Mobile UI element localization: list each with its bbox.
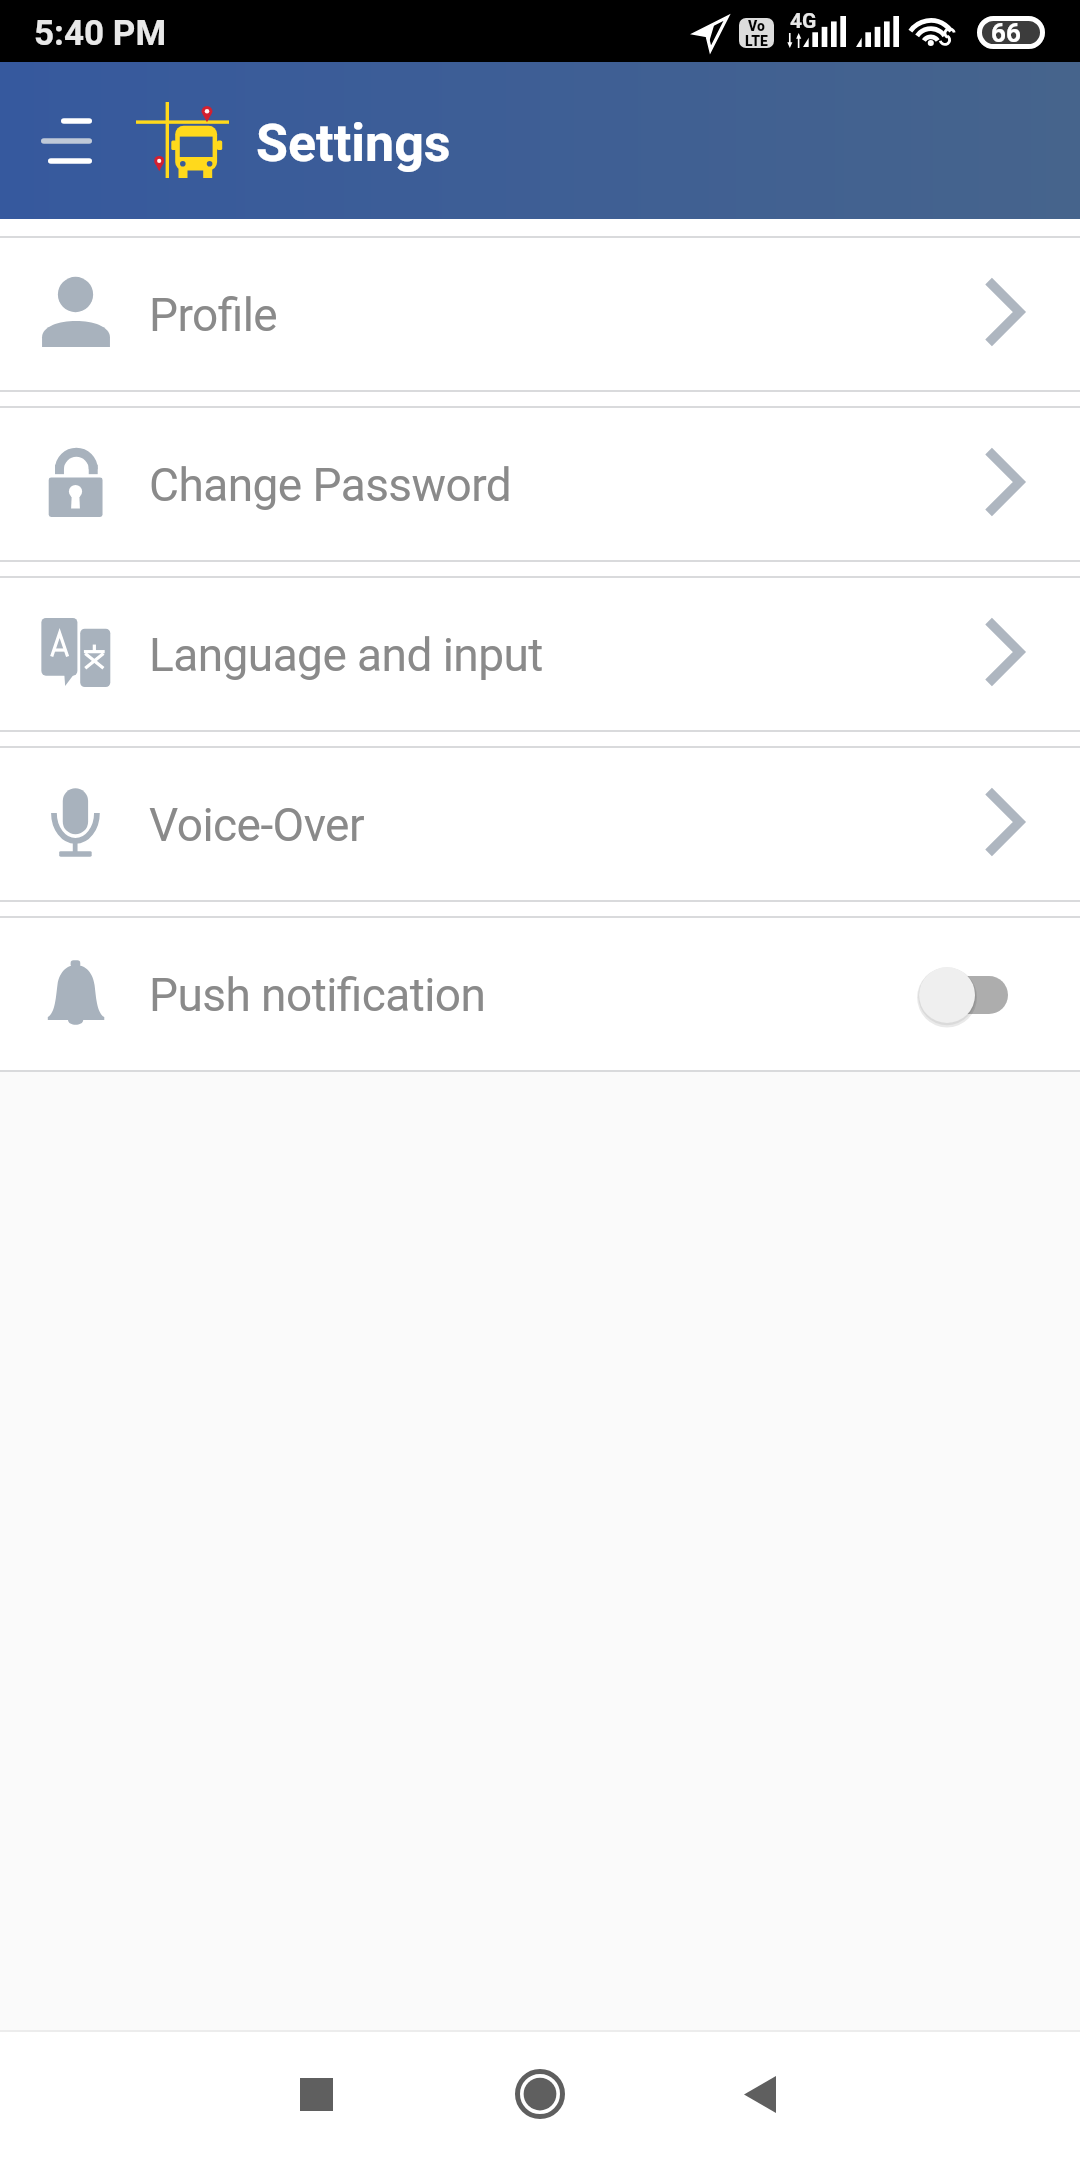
staticText: Voice-Over [149, 798, 364, 852]
staticText: Push notification [149, 968, 486, 1022]
button[interactable]: Open navigation menu [10, 96, 102, 186]
button[interactable]: Push notification toggle [912, 957, 1016, 1027]
staticText: Profile [149, 288, 278, 342]
staticText: Language and input [149, 628, 543, 682]
button[interactable]: Change Password [0, 408, 1080, 560]
staticText: 66 [991, 18, 1021, 48]
button[interactable]: Back [670, 2032, 850, 2160]
staticText: Change Password [149, 458, 512, 512]
button[interactable]: Language and input [0, 578, 1080, 730]
staticText: LTE [745, 33, 768, 48]
staticText: Vo [748, 18, 765, 34]
staticText: 4G [790, 9, 817, 34]
button[interactable]: Recent apps [226, 2032, 406, 2160]
button[interactable]: Push notification [0, 918, 1080, 1070]
staticText: 5:40 PM [34, 13, 167, 54]
staticText: Settings [256, 113, 451, 174]
button[interactable]: Voice-Over [0, 748, 1080, 900]
button[interactable]: Home [450, 2032, 630, 2160]
button[interactable]: Profile [0, 238, 1080, 390]
